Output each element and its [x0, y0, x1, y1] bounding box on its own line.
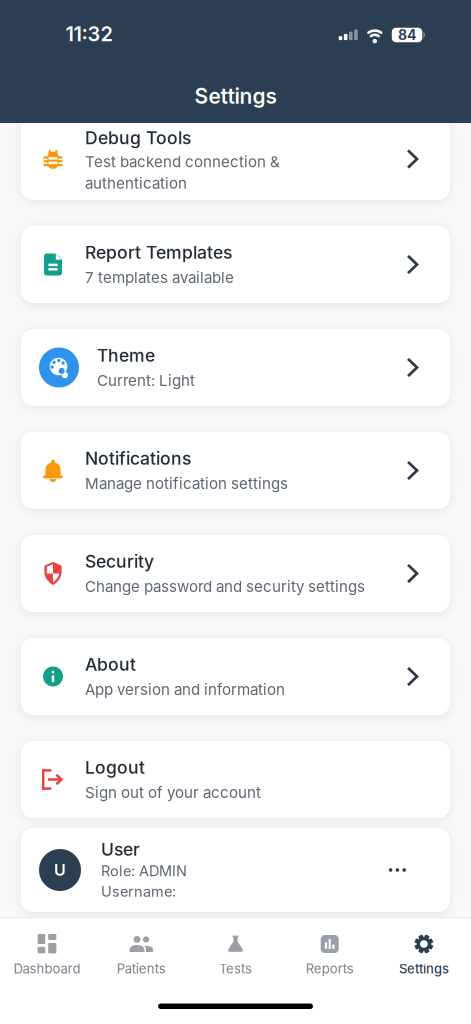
staticText: Logout — [85, 757, 145, 778]
staticText: U — [54, 860, 66, 880]
staticText: Debug Tools — [85, 127, 191, 149]
button[interactable]: Reports — [283, 934, 377, 977]
staticText: Role: ADMIN — [101, 862, 187, 880]
button[interactable]: Patients — [94, 934, 188, 977]
staticText: Security — [85, 551, 154, 572]
staticText: User — [101, 839, 140, 860]
button[interactable]: Settings — [377, 934, 471, 977]
staticText: Tests — [219, 961, 252, 977]
staticText: Theme — [97, 345, 155, 366]
staticText: Change password and security settings — [85, 577, 365, 596]
button[interactable]: Theme — [21, 329, 450, 406]
staticText: Settings — [194, 83, 276, 109]
button[interactable]: Security — [21, 535, 450, 612]
staticText: Dashboard — [14, 961, 81, 977]
staticText: 84 — [398, 26, 416, 43]
button[interactable]: U — [21, 828, 450, 912]
button[interactable]: Debug Tools — [21, 109, 450, 200]
button[interactable]: Tests — [188, 934, 283, 977]
staticText: App version and information — [85, 680, 285, 699]
button[interactable]: Report Templates — [21, 226, 450, 303]
staticText: Settings — [399, 961, 449, 977]
staticText: 11:32 — [65, 22, 112, 46]
staticText: Reports — [306, 961, 354, 977]
staticText: Username: — [101, 883, 176, 900]
staticText: 7 templates available — [85, 268, 234, 287]
staticText: Patients — [117, 961, 166, 977]
button[interactable]: Dashboard — [0, 934, 94, 977]
staticText: Sign out of your account — [85, 783, 261, 802]
button[interactable]: Logout — [21, 741, 450, 818]
staticText: Test backend connection & — [85, 153, 280, 171]
staticText: Current: Light — [97, 371, 195, 390]
staticText: Report Templates — [85, 242, 232, 263]
staticText: About — [85, 654, 136, 675]
staticText: Notifications — [85, 448, 191, 469]
staticText: Manage notification settings — [85, 474, 288, 493]
staticText: authentication — [85, 174, 187, 192]
button[interactable]: About — [21, 638, 450, 715]
button[interactable]: Notifications — [21, 432, 450, 509]
